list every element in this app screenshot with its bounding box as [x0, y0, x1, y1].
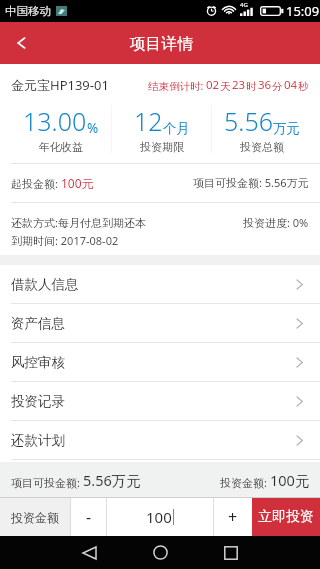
staticText: 分: [272, 80, 283, 93]
staticText: %: [87, 119, 99, 137]
staticText: 100: [146, 507, 172, 527]
button[interactable]: Home: [136, 536, 184, 569]
staticText: 项目详情: [130, 34, 194, 54]
staticText: 5.56: [224, 104, 273, 138]
staticText: 万元: [273, 120, 300, 137]
staticText: 36: [258, 77, 272, 93]
button[interactable]: Decrease amount: [71, 498, 106, 536]
staticText: 起投金额:: [11, 176, 61, 191]
staticText: 到期时间: 2017-08-02: [11, 233, 119, 248]
staticText: 结束倒计时:: [148, 79, 204, 93]
staticText: 项目可投金额: 5.56万元: [193, 175, 309, 190]
staticText: 15:09: [286, 2, 320, 20]
button[interactable]: 还款计划: [0, 421, 320, 459]
staticText: 100元: [270, 470, 310, 490]
staticText: 金元宝HP139-01: [11, 76, 109, 94]
staticText: 天: [220, 80, 231, 93]
staticText: 12: [134, 104, 163, 138]
button[interactable]: Back: [0, 22, 42, 64]
staticText: 秒: [298, 80, 309, 93]
button[interactable]: Increase amount: [214, 498, 252, 536]
staticText: 投资记录: [11, 393, 65, 410]
staticText: 借款人信息: [11, 276, 79, 293]
staticText: -: [86, 506, 92, 528]
staticText: 04: [284, 77, 298, 93]
staticText: 项目可投金额:: [11, 475, 80, 490]
staticText: +: [228, 506, 238, 528]
staticText: 23: [232, 77, 246, 93]
staticText: 中国移动: [5, 4, 51, 18]
staticText: 5.56万元: [83, 470, 141, 490]
button[interactable]: Back: [65, 536, 113, 569]
button[interactable]: 投资记录: [0, 382, 320, 420]
staticText: 投资期限: [140, 140, 184, 154]
staticText: 风控审核: [11, 354, 65, 371]
staticText: 还款方式:每月付息到期还本: [11, 215, 243, 230]
button[interactable]: 借款人信息: [0, 265, 320, 303]
staticText: 投资进度: 0%: [243, 215, 309, 230]
button[interactable]: 立即投资: [252, 498, 320, 536]
staticText: 还款计划: [11, 432, 65, 449]
staticText: 02: [206, 77, 220, 93]
staticText: 年化收益: [39, 140, 83, 154]
staticText: 资产信息: [11, 315, 65, 332]
staticText: 4G: [240, 1, 248, 9]
staticText: 投资金额: [11, 510, 59, 525]
staticText: 13.00: [23, 104, 87, 138]
button[interactable]: 风控审核: [0, 343, 320, 381]
staticText: 时: [246, 80, 257, 93]
button[interactable]: 资产信息: [0, 304, 320, 342]
button[interactable]: Recent apps: [207, 536, 255, 569]
staticText: 投资总额: [240, 140, 284, 154]
staticText: 投资金额:: [220, 475, 267, 490]
staticText: 个月: [163, 120, 190, 137]
staticText: 100元: [61, 175, 94, 191]
staticText: 立即投资: [258, 508, 314, 526]
